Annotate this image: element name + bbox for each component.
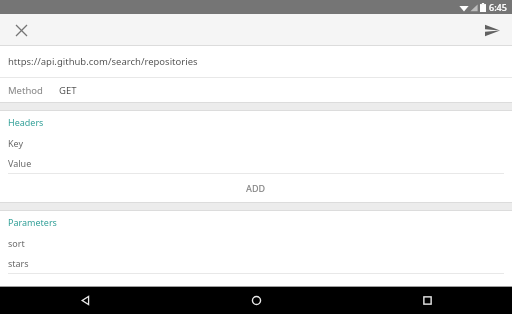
- staticText: ADD: [246, 182, 266, 194]
- staticText: sort: [8, 237, 25, 249]
- staticText: Parameters: [8, 216, 57, 228]
- button[interactable]: Back: [0, 287, 171, 314]
- button[interactable]: ADD: [0, 174, 512, 202]
- staticText: Value: [8, 157, 32, 169]
- staticText: https://api.github.com/search/repositori…: [8, 55, 198, 68]
- button[interactable]: Recent apps: [342, 287, 512, 314]
- button[interactable]: Method: [0, 78, 512, 102]
- staticText: stars: [8, 257, 29, 269]
- button[interactable]: stars: [0, 253, 512, 273]
- staticText: Method: [8, 84, 43, 97]
- staticText: Headers: [8, 116, 44, 128]
- button[interactable]: Close: [10, 19, 32, 41]
- staticText: 6:45: [489, 1, 507, 13]
- button[interactable]: Send: [480, 18, 504, 42]
- button[interactable]: Key: [0, 133, 512, 153]
- button[interactable]: Home: [171, 287, 342, 314]
- button[interactable]: Value: [0, 153, 512, 173]
- staticText: GET: [59, 84, 77, 97]
- button[interactable]: sort: [0, 233, 512, 253]
- staticText: Key: [8, 137, 24, 149]
